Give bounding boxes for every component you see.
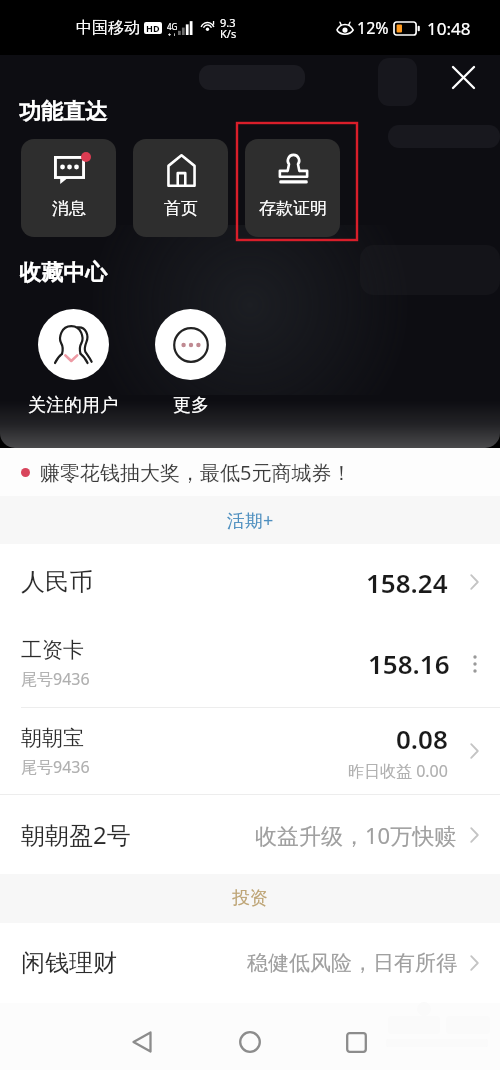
staticText: 活期+ (227, 508, 274, 533)
staticText: 0.08 (396, 721, 448, 756)
button[interactable]: 存款证明 (245, 139, 340, 237)
button[interactable]: 关注的用户 (28, 309, 118, 417)
button[interactable]: Close (441, 55, 485, 99)
staticText: 10:48 (427, 17, 471, 40)
staticText: 赚零花钱抽大奖，最低5元商城券！ (40, 459, 352, 486)
staticText: 首页 (164, 198, 198, 219)
staticText: 158.24 (366, 565, 448, 600)
button[interactable]: 工资卡 (0, 620, 500, 707)
staticText: 人民币 (21, 567, 93, 597)
button[interactable]: 闲钱理财 (0, 923, 500, 1002)
button[interactable]: 人民币 (0, 544, 500, 620)
staticText: 收藏中心 (19, 259, 107, 287)
staticText: HD (146, 22, 160, 34)
button[interactable]: 赚零花钱抽大奖，最低5元商城券！ (0, 448, 500, 496)
staticText: 收益升级，10万快赎 (255, 820, 457, 850)
staticText: 朝朝宝 (21, 725, 84, 751)
staticText: 关注的用户 (28, 394, 118, 417)
staticText: 12% (357, 17, 389, 39)
staticText: 闲钱理财 (21, 948, 117, 978)
staticText: 中国移动 (76, 18, 140, 38)
button[interactable]: Recents (331, 1017, 381, 1067)
button[interactable]: 更多 (155, 309, 226, 417)
staticText: 功能直达 (19, 98, 107, 126)
staticText: 消息 (52, 198, 86, 219)
staticText: 158.16 (368, 646, 450, 681)
staticText: 尾号9436 (21, 756, 90, 778)
staticText: 存款证明 (259, 198, 327, 219)
button[interactable]: 朝朝宝 (0, 708, 500, 794)
staticText: 朝朝盈2号 (21, 818, 131, 851)
staticText: 9.3 K/s (220, 15, 237, 41)
button[interactable]: Back (117, 1017, 167, 1067)
staticText: 昨日收益 0.00 (348, 760, 448, 782)
button[interactable]: Home (225, 1017, 275, 1067)
staticText: 投资 (232, 887, 268, 910)
staticText: 稳健低风险，日有所得 (247, 950, 457, 976)
button[interactable]: 消息 (21, 139, 116, 237)
staticText: 尾号9436 (21, 668, 90, 690)
staticText: 更多 (173, 394, 209, 417)
button[interactable]: More options (469, 655, 481, 673)
button[interactable]: 朝朝盈2号 (0, 795, 500, 874)
staticText: 工资卡 (21, 637, 84, 663)
button[interactable]: 首页 (133, 139, 228, 237)
staticText: ↑↓ (167, 32, 178, 36)
staticText: 4G (167, 21, 178, 32)
